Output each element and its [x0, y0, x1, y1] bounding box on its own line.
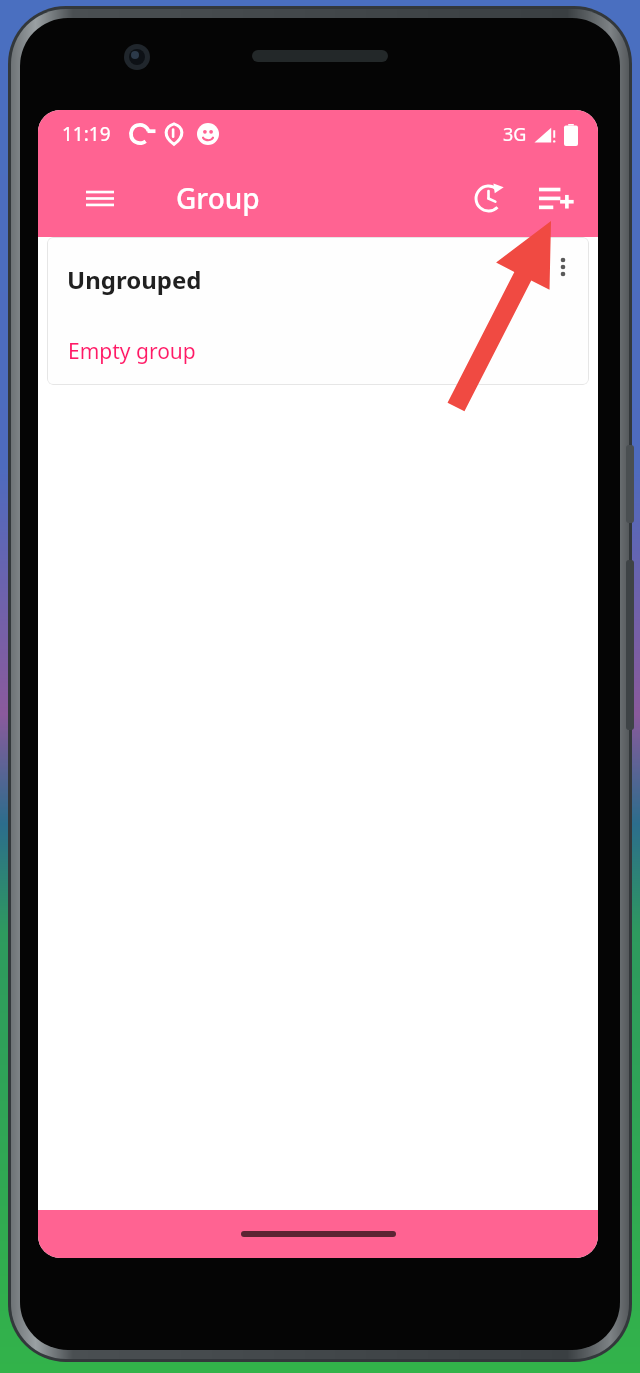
staticText: 11:19 [62, 121, 111, 147]
staticText: Ungrouped [67, 263, 202, 296]
button[interactable]: History [462, 172, 514, 224]
staticText: Empty group [68, 337, 196, 366]
staticText: Group [176, 179, 260, 217]
button[interactable]: Add group [530, 172, 582, 224]
staticText: 3G [503, 122, 527, 147]
button[interactable]: More options [539, 243, 587, 291]
button[interactable]: Ungrouped [47, 237, 589, 385]
button[interactable]: Open navigation menu [76, 174, 124, 222]
